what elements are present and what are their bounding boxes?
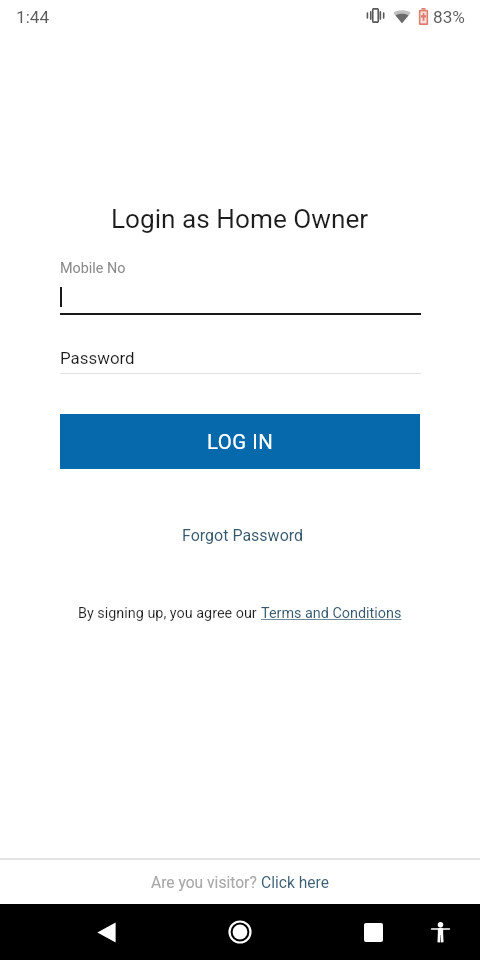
button[interactable]: Recent apps: [333, 904, 413, 960]
button[interactable]: Terms and Conditions: [261, 605, 402, 622]
staticText: Are you visitor?: [151, 874, 261, 892]
staticText: Forgot Password: [182, 526, 304, 545]
button[interactable]: Home: [200, 904, 280, 960]
staticText: Click here: [261, 874, 329, 892]
button[interactable]: Back: [66, 904, 146, 960]
button[interactable]: Accessibility: [405, 904, 475, 960]
button[interactable]: Password: [60, 346, 421, 375]
staticText: Password: [60, 348, 135, 368]
button[interactable]: Forgot Password: [176, 522, 310, 549]
staticText: Mobile No: [60, 260, 126, 277]
button[interactable]: Mobile No: [60, 257, 421, 315]
staticText: By signing up, you agree our: [78, 605, 261, 622]
staticText: LOG IN: [207, 430, 274, 454]
staticText: Login as Home Owner: [111, 204, 369, 235]
button[interactable]: Click here: [261, 874, 329, 892]
button[interactable]: LOG IN: [60, 414, 420, 469]
staticText: 83%: [433, 7, 465, 27]
staticText: Terms and Conditions: [261, 605, 402, 622]
staticText: 1:44: [16, 7, 50, 27]
